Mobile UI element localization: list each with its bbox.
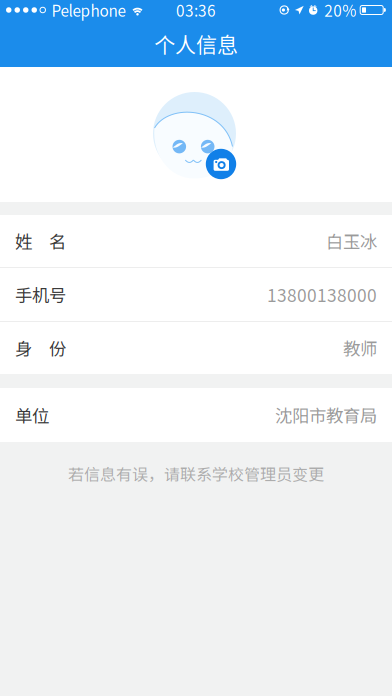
staticText: 若信息有误，请联系学校管理员变更: [68, 462, 324, 485]
button[interactable]: 手机号: [0, 268, 392, 321]
staticText: 个人信息: [154, 28, 238, 59]
button[interactable]: 姓 名: [0, 215, 392, 267]
staticText: 姓 名: [15, 228, 66, 254]
staticText: Pelephone: [51, 0, 125, 21]
staticText: 沈阳市教育局: [275, 402, 377, 428]
staticText: 单位: [15, 402, 49, 428]
staticText: 白玉冰: [326, 228, 377, 254]
button[interactable]: Change profile photo: [205, 148, 236, 179]
button[interactable]: 单位: [0, 388, 392, 442]
staticText: 03:36: [176, 0, 216, 21]
staticText: 教师: [343, 335, 377, 361]
button[interactable]: 身 份: [0, 322, 392, 374]
staticText: 20%: [324, 0, 356, 21]
staticText: 13800138000: [267, 282, 377, 307]
staticText: 身 份: [15, 335, 66, 361]
staticText: 手机号: [15, 282, 66, 307]
